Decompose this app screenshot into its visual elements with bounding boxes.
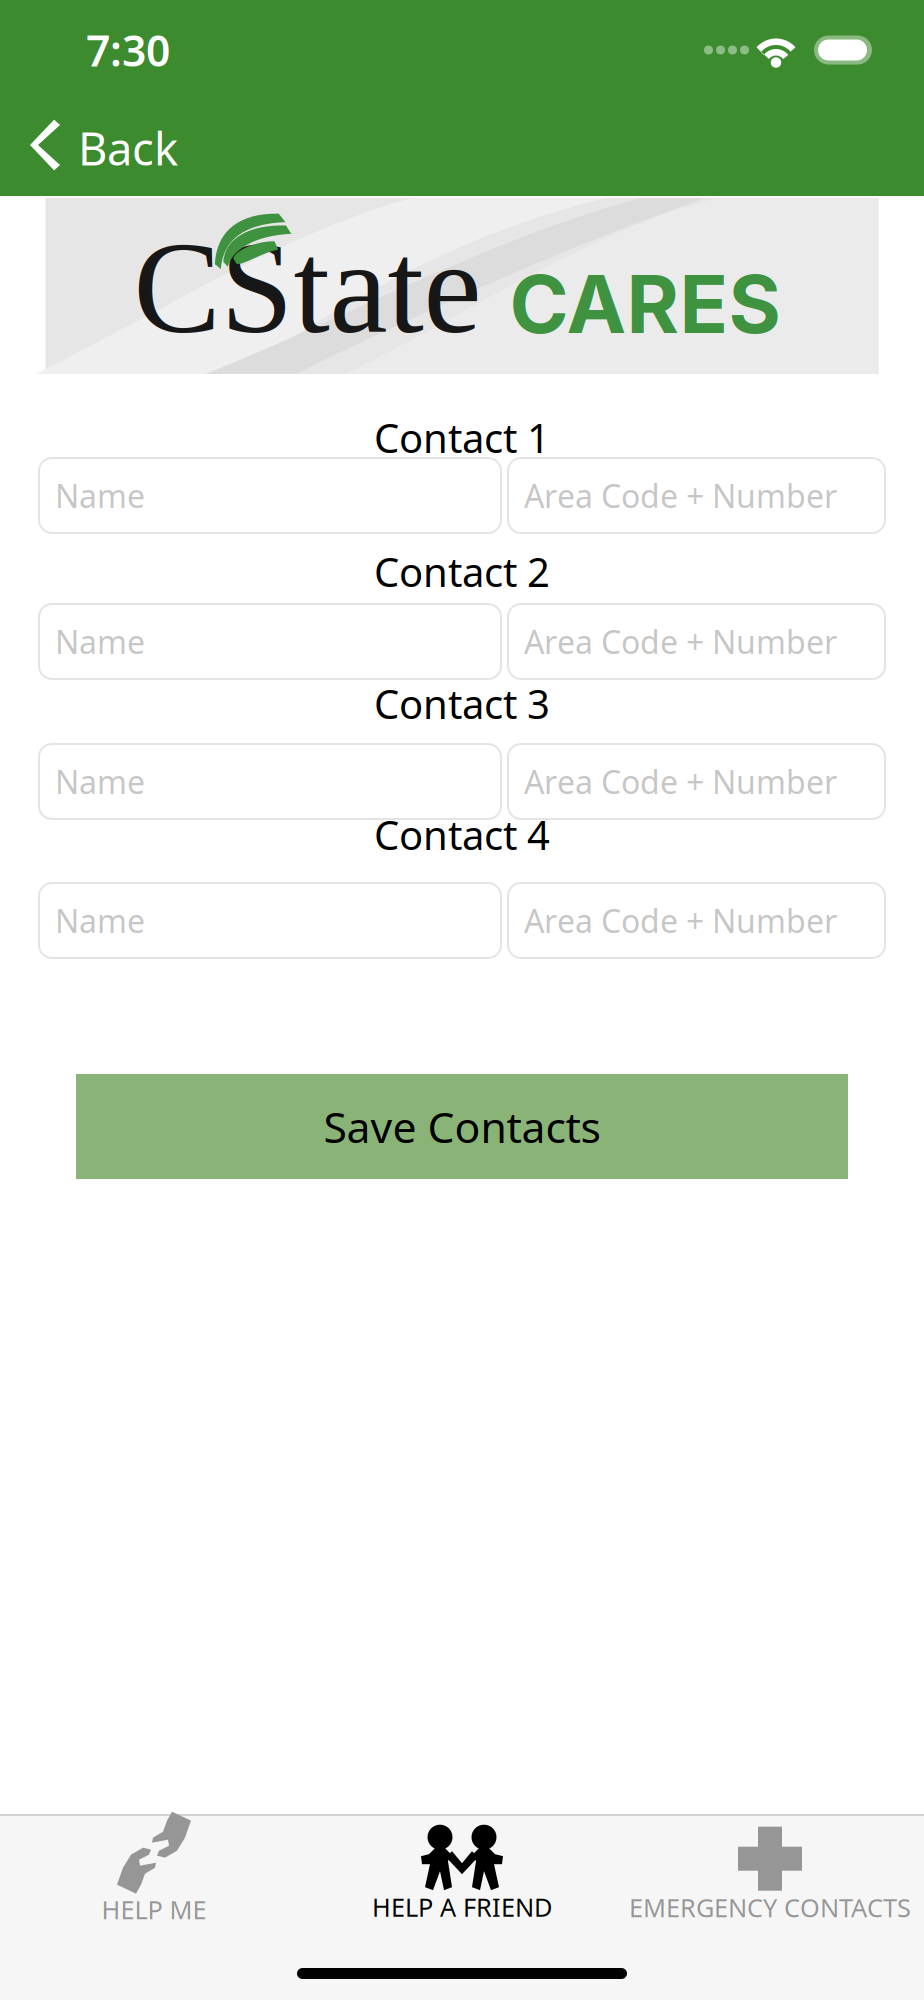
button[interactable]: Area Code + Number	[508, 744, 885, 819]
staticText: HELP ME	[101, 1893, 206, 1926]
staticText: Name	[55, 620, 145, 663]
staticText: Save Contacts	[323, 1098, 600, 1155]
button[interactable]: EMERGENCY CONTACTS	[616, 1816, 924, 1918]
button[interactable]: Save Contacts	[76, 1074, 848, 1179]
staticText: Area Code + Number	[524, 760, 837, 803]
staticText: EMERGENCY CONTACTS	[629, 1891, 911, 1924]
staticText: CARES	[509, 256, 780, 352]
staticText: Name	[55, 474, 145, 517]
staticText: HELP A FRIEND	[372, 1890, 552, 1924]
staticText: CState	[133, 216, 481, 360]
staticText: Contact 1	[374, 411, 550, 464]
button[interactable]: HELP ME	[0, 1816, 308, 1918]
staticText: 7:30	[86, 22, 170, 78]
button[interactable]: Name	[39, 604, 501, 679]
staticText: Area Code + Number	[524, 620, 837, 663]
button[interactable]: Area Code + Number	[508, 458, 885, 533]
staticText: Area Code + Number	[524, 899, 837, 942]
staticText: Contact 3	[374, 677, 550, 730]
button[interactable]: Back	[0, 100, 178, 196]
button[interactable]: Name	[39, 883, 501, 958]
staticText: Name	[55, 899, 145, 942]
staticText: Name	[55, 760, 145, 803]
staticText: Area Code + Number	[524, 474, 837, 517]
button[interactable]: Name	[39, 744, 501, 819]
button[interactable]: Area Code + Number	[508, 883, 885, 958]
button[interactable]: HELP A FRIEND	[308, 1816, 616, 1918]
button[interactable]: Name	[39, 458, 501, 533]
staticText: Back	[78, 118, 178, 178]
staticText: Contact 2	[374, 545, 550, 598]
staticText: Contact 4	[374, 808, 550, 861]
button[interactable]: Area Code + Number	[508, 604, 885, 679]
